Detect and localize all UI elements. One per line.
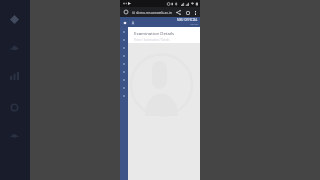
button[interactable]: Host nav item 4 (6, 127, 22, 143)
button[interactable]: Web nav 8 (120, 92, 128, 100)
button[interactable]: Host nav item 3 (6, 99, 22, 115)
staticText: MSU OFFICIAL (177, 18, 198, 22)
button[interactable]: Host nav item 2 (6, 67, 22, 83)
button[interactable]: Web nav 5 (120, 68, 128, 76)
button[interactable]: Address bar (132, 10, 173, 15)
button[interactable]: More options (192, 9, 199, 16)
button[interactable]: Web nav 0 (120, 28, 128, 36)
staticText: Log out (190, 23, 198, 26)
button[interactable]: Host nav item 0 (6, 11, 22, 27)
button[interactable]: Web nav 1 (120, 36, 128, 44)
button[interactable]: Web nav 7 (120, 84, 128, 92)
staticText: sbmu.msuonweb.ac.in (136, 10, 172, 15)
button[interactable]: Web nav 6 (120, 76, 128, 84)
button[interactable]: Web nav 4 (120, 60, 128, 68)
staticText: Home / Examination / Details (134, 38, 170, 42)
button[interactable]: Web nav 3 (120, 52, 128, 60)
button[interactable]: Web nav 2 (120, 44, 128, 52)
staticText: Examination Details (134, 30, 175, 36)
button[interactable]: Share (173, 7, 183, 17)
button[interactable]: Reload (122, 8, 130, 16)
button[interactable]: Menu (121, 19, 128, 26)
button[interactable]: Tabs (183, 8, 192, 17)
button[interactable]: Account (129, 19, 136, 26)
button[interactable]: Examination Details (128, 27, 200, 43)
button[interactable]: Host nav item 1 (6, 39, 22, 55)
